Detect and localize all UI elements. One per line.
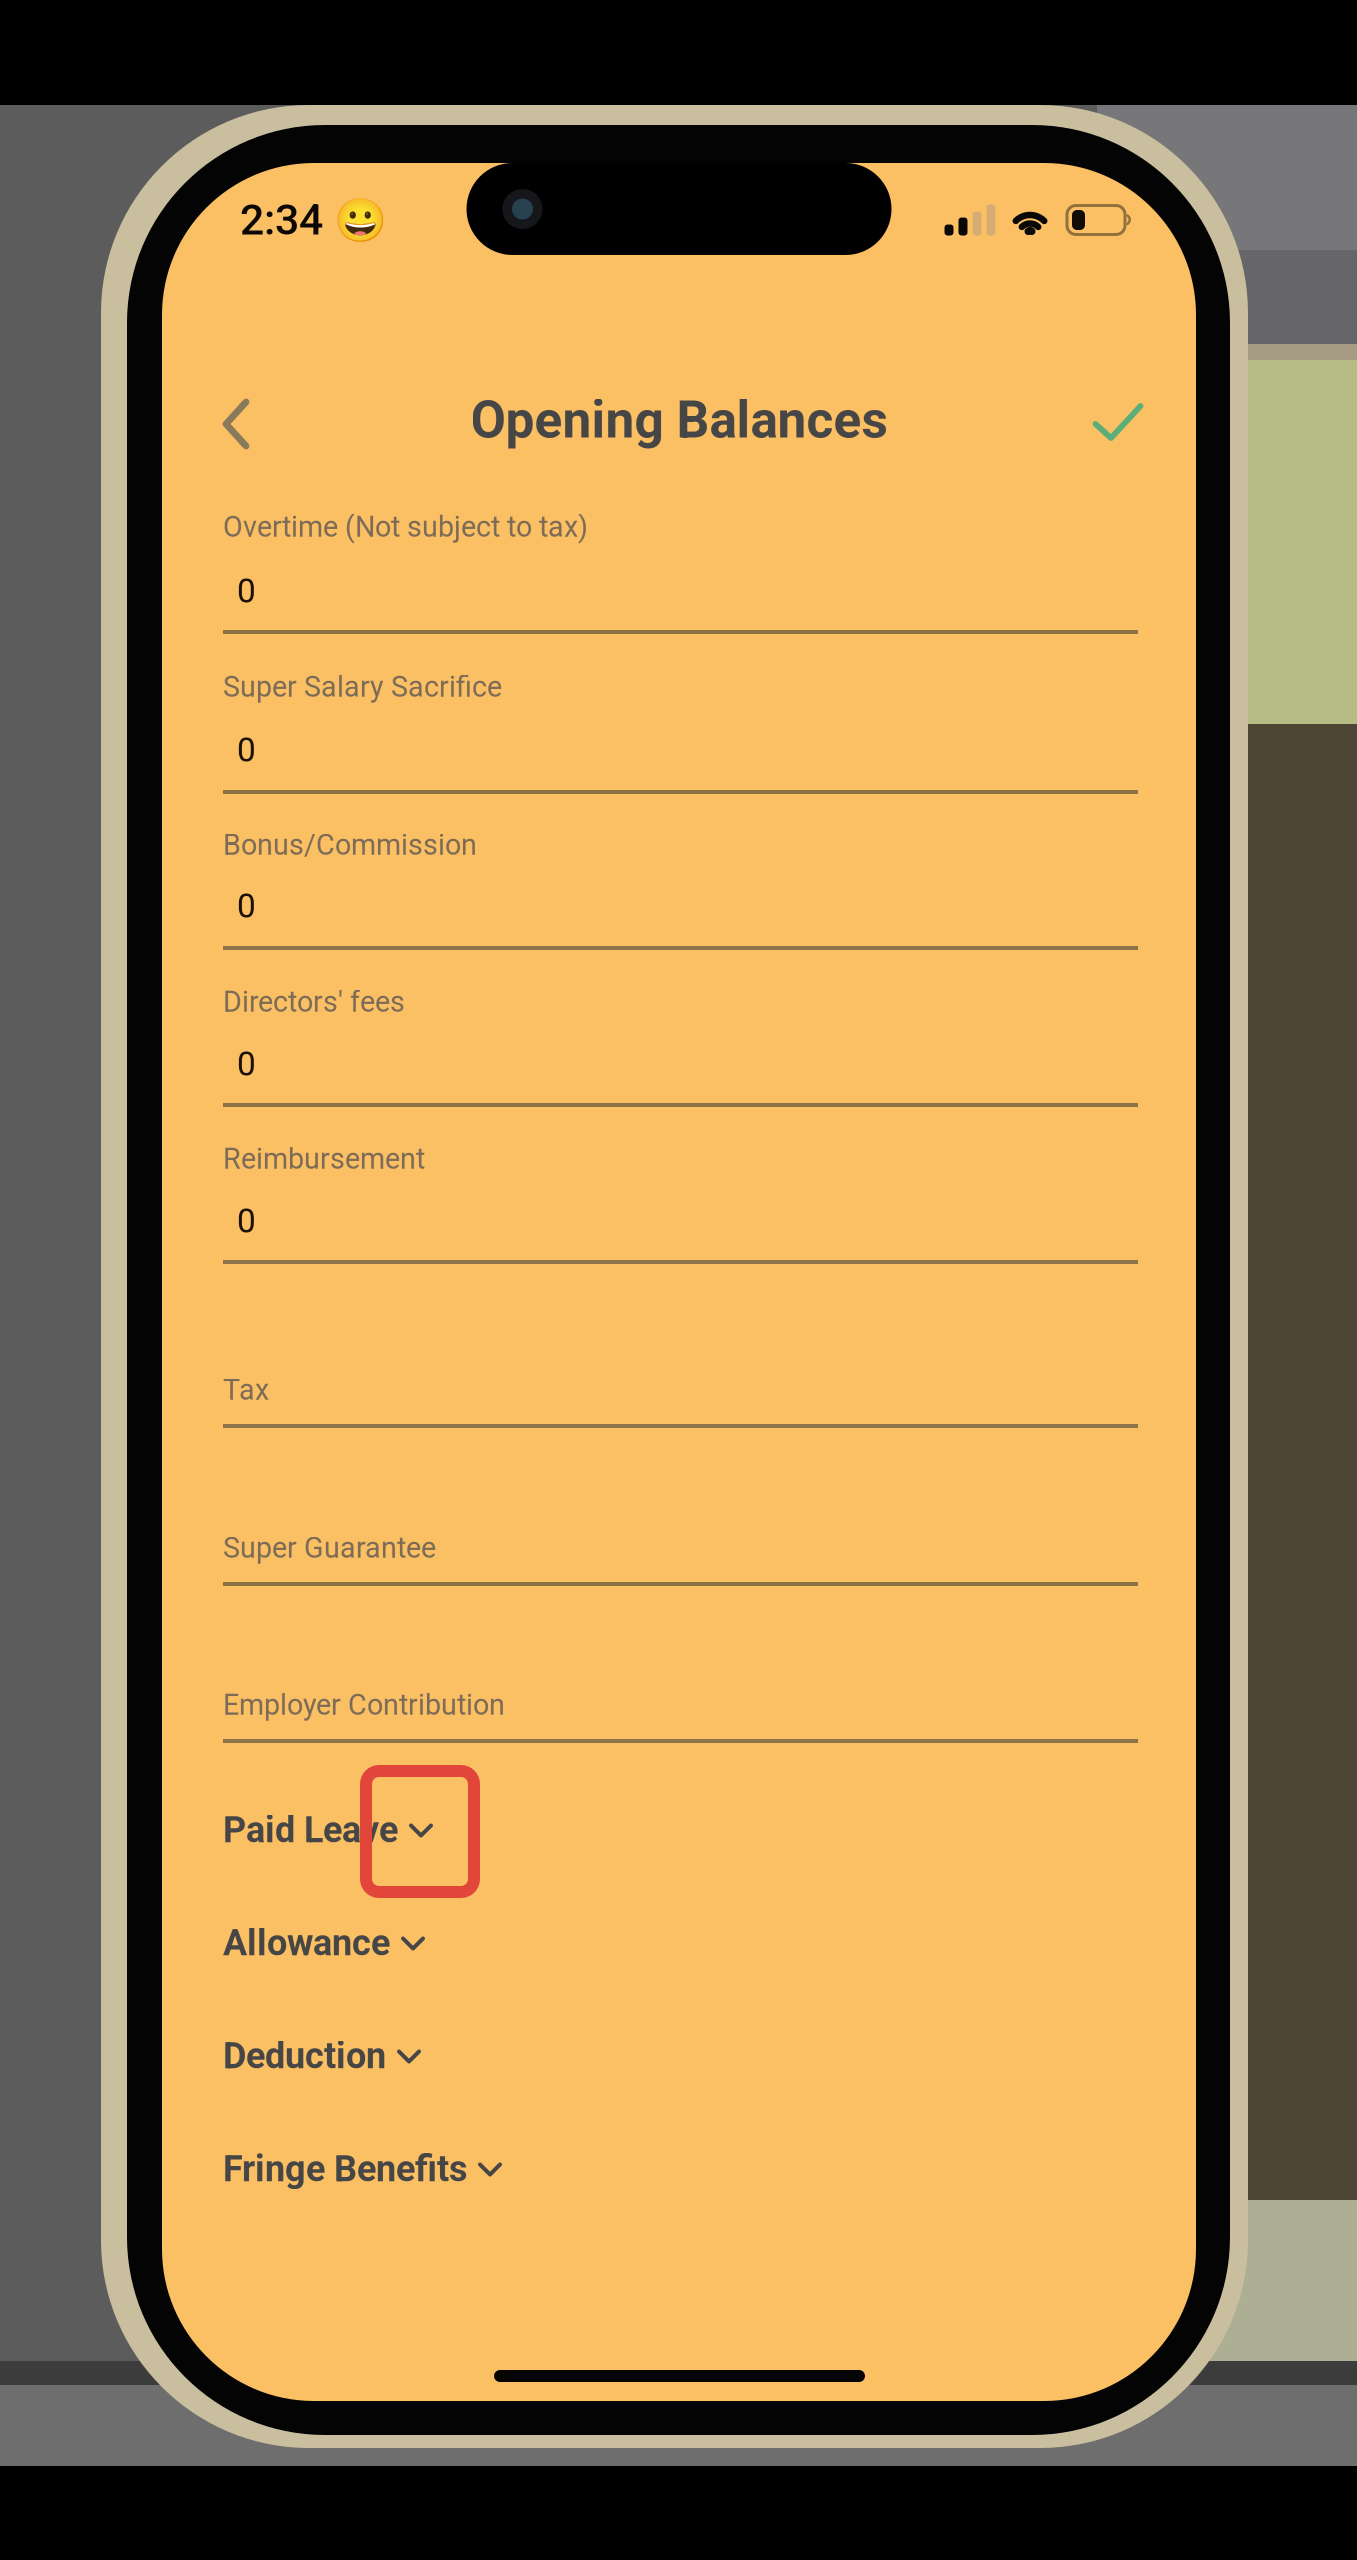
staticText: 0 [237, 571, 256, 611]
staticText: Deduction [223, 2035, 386, 2077]
staticText: Fringe Benefits [223, 2148, 467, 2190]
staticText: 0 [237, 730, 256, 770]
staticText: Paid Leave [223, 1809, 398, 1851]
staticText: 0 [237, 886, 256, 926]
staticText: Super Guarantee [223, 1531, 436, 1565]
staticText: 0 [237, 1201, 256, 1241]
button[interactable]: Back [186, 374, 286, 474]
staticText: 2:34 😀 [240, 195, 387, 245]
staticText: Super Salary Sacrifice [223, 670, 502, 704]
staticText: Directors' fees [223, 985, 405, 1019]
staticText: Opening Balances [470, 390, 887, 450]
button[interactable]: Deduction [223, 2021, 1138, 2091]
button[interactable]: Allowance [223, 1908, 1138, 1978]
button[interactable]: Save [1068, 372, 1168, 472]
staticText: Reimbursement [223, 1142, 425, 1176]
staticText: 0 [237, 1044, 256, 1084]
staticText: Bonus/Commission [223, 828, 477, 862]
staticText: Tax [223, 1373, 269, 1407]
staticText: Overtime (Not subject to tax) [223, 510, 588, 544]
button[interactable]: Paid Leave [223, 1795, 1138, 1865]
button[interactable]: Fringe Benefits [223, 2134, 1138, 2204]
staticText: Employer Contribution [223, 1688, 505, 1722]
staticText: Allowance [223, 1922, 390, 1964]
